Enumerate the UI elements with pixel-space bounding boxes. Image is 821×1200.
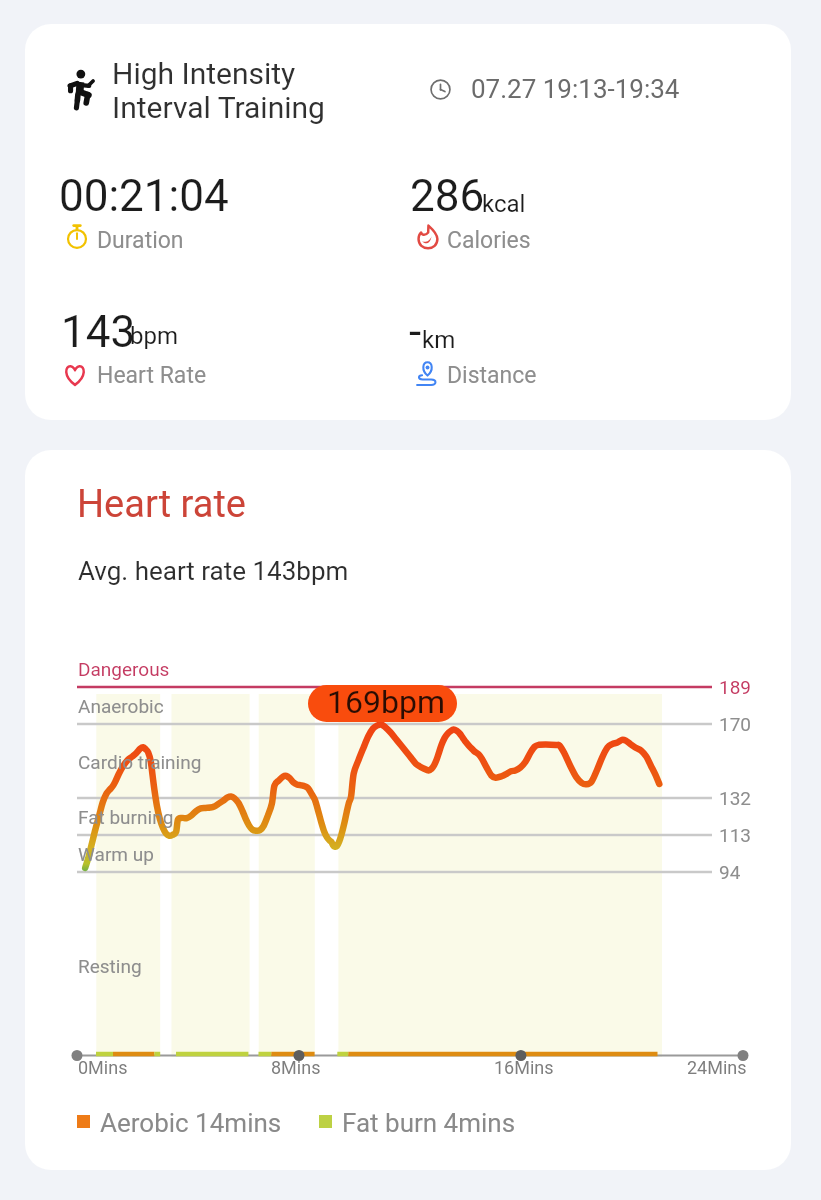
button[interactable]: Running workout [25, 24, 791, 420]
staticText: 8Mins [271, 1057, 321, 1078]
staticText: Interval Training [112, 90, 325, 125]
button[interactable]: 169bpm [308, 685, 457, 722]
staticText: 189 [719, 676, 752, 698]
staticText: Avg. heart rate 143bpm [78, 556, 349, 586]
staticText: Fat burning [78, 806, 174, 828]
staticText: 169bpm [327, 685, 445, 720]
staticText: Calories [447, 227, 531, 254]
staticText: 170 [719, 713, 752, 735]
staticText: Resting [78, 955, 142, 977]
staticText: kcal [482, 190, 526, 218]
staticText: 0Mins [78, 1057, 128, 1078]
staticText: 07.27 19:13-19:34 [471, 74, 680, 104]
staticText: Cardio training [78, 751, 202, 773]
staticText: Heart Rate [97, 362, 207, 389]
staticText: 16Mins [494, 1057, 554, 1078]
staticText: 00:21:04 [59, 170, 229, 222]
other: Time [430, 79, 451, 100]
staticText: km [422, 326, 456, 354]
staticText: 286 [410, 170, 485, 222]
staticText: bpm [130, 322, 178, 350]
staticText: Aerobic 14mins [100, 1108, 282, 1138]
staticText: High Intensity [112, 56, 296, 91]
staticText: Warm up [78, 843, 154, 865]
staticText: 143 [61, 306, 136, 358]
staticText: 113 [719, 824, 752, 846]
other: Running workout [61, 65, 110, 114]
staticText: - [409, 306, 422, 358]
staticText: 94 [719, 861, 741, 883]
staticText: Dangerous [78, 658, 170, 680]
staticText: Duration [97, 227, 184, 254]
staticText: Anaerobic [78, 695, 164, 717]
staticText: 132 [719, 787, 752, 809]
staticText: Distance [447, 362, 537, 389]
staticText: Heart rate [77, 482, 246, 527]
button[interactable]: Heart rate [25, 450, 791, 1170]
staticText: 24Mins [687, 1057, 747, 1078]
staticText: Fat burn 4mins [342, 1108, 516, 1138]
